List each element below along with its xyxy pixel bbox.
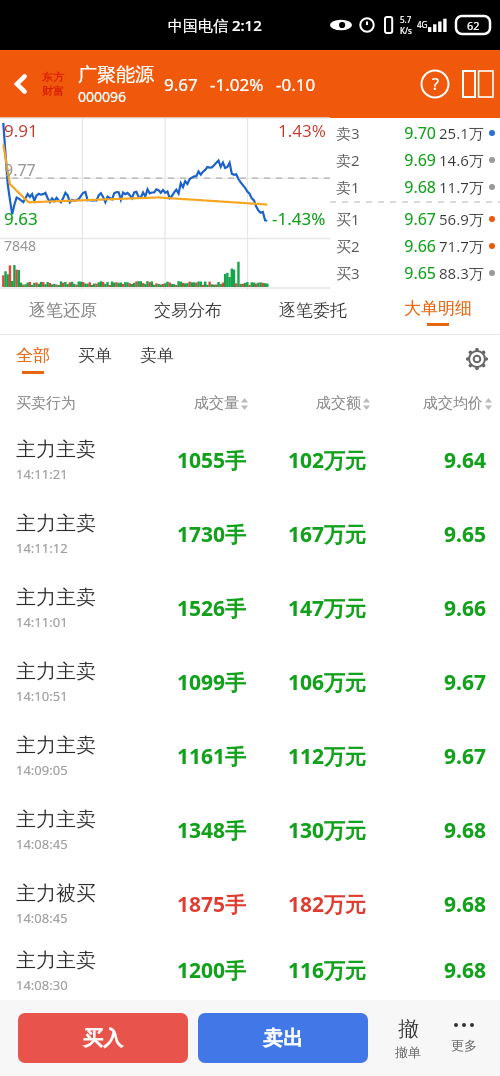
button[interactable]: 逐笔还原 <box>0 290 125 334</box>
staticText: 000096 <box>78 87 127 106</box>
staticText: 9.67 <box>164 73 198 96</box>
staticText: 4G <box>417 19 428 30</box>
staticText: 主力被买 <box>16 881 96 906</box>
staticText: 167万元 <box>246 520 366 549</box>
button[interactable]: 全部 <box>16 335 50 383</box>
staticText: 逐笔委托 <box>279 300 347 321</box>
button[interactable]: 主力主卖 <box>0 941 500 1000</box>
button[interactable]: 卖2 <box>330 146 500 173</box>
staticText: K/s <box>400 25 412 36</box>
staticText: 9.68 <box>366 956 486 985</box>
staticText: 逐笔还原 <box>29 300 97 321</box>
staticText: 成交额 <box>316 394 361 413</box>
button[interactable]: 主力被买 <box>0 867 500 941</box>
staticText: 1099手 <box>126 668 246 697</box>
button[interactable]: Help <box>414 63 456 105</box>
staticText: 9.63 <box>4 207 38 230</box>
staticText: 106万元 <box>246 668 366 697</box>
staticText: 9.91 <box>4 119 38 142</box>
button[interactable]: 主力主卖 <box>0 423 500 497</box>
button[interactable]: 买2 <box>330 232 500 259</box>
button[interactable]: 撤 <box>380 1000 436 1076</box>
staticText: 14:11:12 <box>16 539 68 557</box>
staticText: 主力主卖 <box>16 585 96 610</box>
staticText: 5.7 <box>400 14 412 25</box>
staticText: -0.10 <box>276 73 316 96</box>
staticText: 14:10:51 <box>16 687 68 705</box>
staticText: 卖2 <box>336 150 360 170</box>
staticText: 14:08:45 <box>16 909 68 927</box>
staticText: 主力主卖 <box>16 948 96 973</box>
button[interactable]: 更多 <box>436 1000 492 1076</box>
staticText: 主力主卖 <box>16 659 96 684</box>
button[interactable]: 交易分布 <box>125 290 250 334</box>
staticText: 1348手 <box>126 816 246 845</box>
button[interactable]: 成交量 <box>126 394 248 413</box>
staticText: 撤 <box>398 1016 419 1042</box>
staticText: 9.66 <box>360 235 436 257</box>
button[interactable]: 主力主卖 <box>0 793 500 867</box>
button[interactable]: 主力主卖 <box>0 719 500 793</box>
staticText: 25.1万 <box>439 123 484 143</box>
staticText: -1.43% <box>272 207 326 230</box>
staticText: 56.9万 <box>439 209 484 229</box>
staticText: -1.02% <box>210 73 264 96</box>
staticText: 14:11:01 <box>16 613 68 631</box>
staticText: 卖1 <box>336 177 360 197</box>
staticText: 1526手 <box>126 594 246 623</box>
staticText: 182万元 <box>246 890 366 919</box>
button[interactable]: 成交额 <box>248 394 370 413</box>
staticText: 更多 <box>451 1037 477 1053</box>
staticText: 147万元 <box>246 594 366 623</box>
staticText: 1200手 <box>126 956 246 985</box>
button[interactable]: 卖3 <box>330 119 500 146</box>
staticText: 买1 <box>336 209 360 229</box>
staticText: 撤单 <box>395 1044 421 1060</box>
staticText: 主力主卖 <box>16 437 96 462</box>
staticText: 主力主卖 <box>16 733 96 758</box>
staticText: 主力主卖 <box>16 807 96 832</box>
staticText: 11.7万 <box>439 177 484 197</box>
staticText: 9.67 <box>366 668 486 697</box>
staticText: 102万元 <box>246 446 366 475</box>
staticText: 卖出 <box>263 1026 303 1051</box>
staticText: 14:08:30 <box>16 976 68 994</box>
staticText: 大单明细 <box>404 298 472 319</box>
button[interactable]: 卖出 <box>198 1013 368 1063</box>
staticText: 62 <box>467 18 480 33</box>
button[interactable]: 主力主卖 <box>0 645 500 719</box>
staticText: 中国电信 2:12 <box>168 15 262 35</box>
staticText: 14:09:05 <box>16 761 68 779</box>
button[interactable]: 买入 <box>18 1013 188 1063</box>
staticText: 9.65 <box>360 262 436 284</box>
staticText: 9.64 <box>366 446 486 475</box>
staticText: 买3 <box>336 263 360 283</box>
button[interactable]: Settings <box>454 336 500 382</box>
staticText: 1875手 <box>126 890 246 919</box>
staticText: 交易分布 <box>154 300 222 321</box>
button[interactable]: 逐笔委托 <box>250 290 375 334</box>
staticText: 财富 <box>42 84 64 98</box>
staticText: 9.66 <box>366 594 486 623</box>
staticText: 买入 <box>83 1026 123 1051</box>
staticText: 9.67 <box>366 742 486 771</box>
staticText: 买卖行为 <box>16 394 126 413</box>
staticText: 14:08:45 <box>16 835 68 853</box>
button[interactable]: Back <box>0 50 42 118</box>
staticText: 东方 <box>42 70 64 84</box>
button[interactable]: Fullscreen <box>456 62 500 106</box>
button[interactable]: 成交均价 <box>370 394 492 413</box>
button[interactable]: 主力主卖 <box>0 571 500 645</box>
button[interactable]: 主力主卖 <box>0 497 500 571</box>
button[interactable]: 卖单 <box>140 335 174 383</box>
button[interactable]: 买3 <box>330 259 500 286</box>
staticText: 14.6万 <box>439 150 484 170</box>
staticText: 成交均价 <box>423 394 483 413</box>
button[interactable]: 卖1 <box>330 173 500 200</box>
staticText: 9.70 <box>360 122 436 144</box>
staticText: 成交量 <box>194 394 239 413</box>
button[interactable]: 大单明细 <box>375 290 500 334</box>
staticText: 9.65 <box>366 520 486 549</box>
button[interactable]: 买单 <box>78 335 112 383</box>
button[interactable]: 买1 <box>330 205 500 232</box>
